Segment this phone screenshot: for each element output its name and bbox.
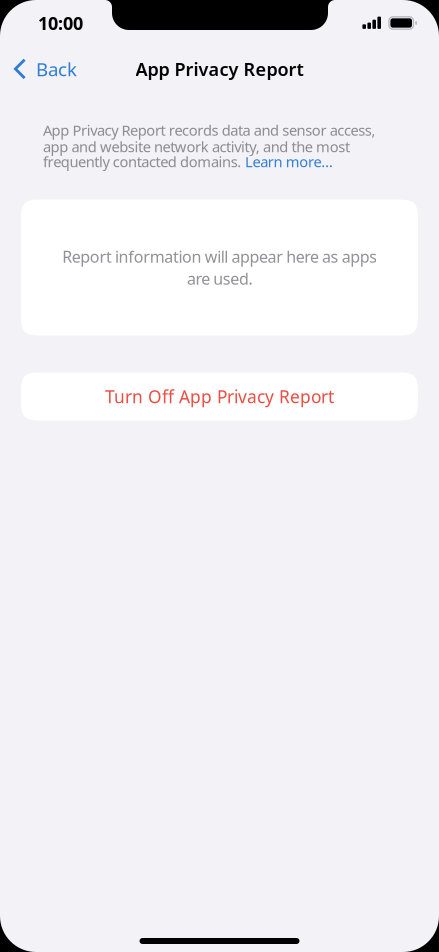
staticText: App Privacy Report records data and sens… xyxy=(43,120,375,157)
button[interactable]: Back xyxy=(0,46,89,92)
staticText: App Privacy Report xyxy=(135,57,303,81)
button[interactable]: Turn Off App Privacy Report xyxy=(21,372,418,420)
staticText: Turn Off App Privacy Report xyxy=(105,385,334,408)
staticText: Back xyxy=(36,56,77,82)
staticText: Report information will appear here as a… xyxy=(62,246,377,289)
staticText: Learn more… xyxy=(245,152,333,172)
staticText: 10:00 xyxy=(38,11,83,35)
staticText: frequently contacted domains. xyxy=(43,152,245,172)
button[interactable]: Learn more… xyxy=(245,152,333,172)
